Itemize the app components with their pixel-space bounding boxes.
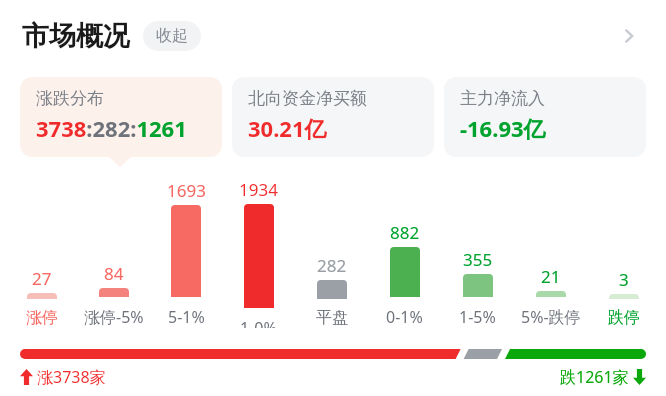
staticText: 84 [104,262,124,285]
button[interactable]: 北向资金净买额 [232,77,434,157]
staticText: 跌停 [608,308,640,328]
button[interactable]: 27 [6,267,78,328]
staticText: 282 [317,254,347,277]
staticText: 0-1% [386,306,423,328]
button[interactable]: 21 [514,265,587,328]
staticText: 收起 [156,26,188,46]
button[interactable]: 涨跌分布 [20,77,222,157]
button[interactable]: 涨跌家数比例 [20,346,646,364]
staticText: 主力净流入 [460,88,545,109]
staticText: 北向资金净买额 [248,88,367,109]
staticText: 1934 [239,178,278,201]
staticText: 5%-跌停 [521,306,581,328]
staticText: 3 [619,268,629,291]
button[interactable]: 84 [78,262,150,328]
staticText: 涨3738家 [37,366,106,388]
staticText: 882 [390,221,420,244]
staticText: 涨停-5% [84,306,144,328]
staticText: 跌1261家 [560,366,629,388]
staticText: 1-0% [240,317,277,328]
staticText: 27 [32,267,52,290]
staticText: 1693 [167,179,206,202]
button[interactable]: 355 [441,248,514,328]
button[interactable]: 跌1261家 [560,366,646,388]
button[interactable]: 收起 [143,21,201,51]
button[interactable]: 1934 [222,178,295,328]
staticText: 涨跌分布 [36,88,104,109]
button[interactable]: 展开市场概况 [612,19,646,53]
button[interactable]: 282 [295,254,368,328]
staticText: 21 [541,265,561,288]
staticText: 市场概况 [22,19,130,53]
staticText: 1-5% [459,306,496,328]
staticText: -16.93亿 [460,113,546,143]
staticText: 5-1% [168,306,205,328]
button[interactable]: 1693 [150,179,222,328]
button[interactable]: 涨3738家 [20,366,106,388]
button[interactable]: 3 [587,268,660,328]
staticText: 平盘 [316,308,348,328]
button[interactable]: 主力净流入 [444,77,646,157]
staticText: 涨停 [26,308,58,328]
staticText: 30.21亿 [248,113,327,143]
button[interactable]: 882 [368,221,441,328]
staticText: 3738:282:1261 [36,113,187,143]
staticText: 355 [463,248,493,271]
